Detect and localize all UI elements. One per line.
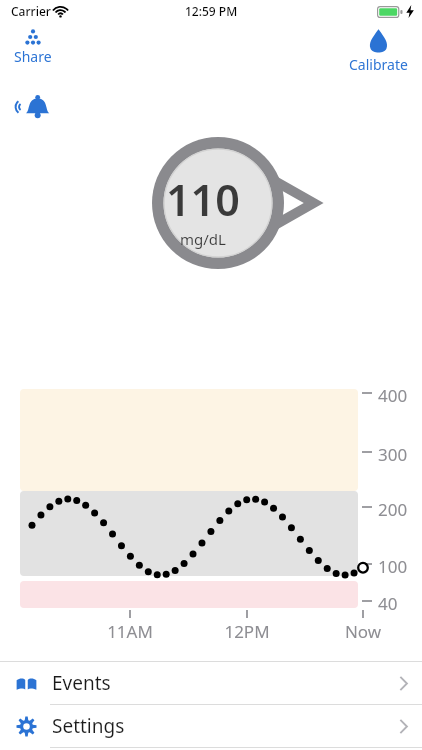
staticText: 400 bbox=[378, 384, 408, 407]
staticText: 12PM bbox=[215, 620, 279, 643]
staticText: Settings bbox=[52, 713, 125, 739]
staticText: Share bbox=[14, 47, 52, 66]
staticText: 12:59 PM bbox=[185, 3, 238, 19]
staticText: mg/dL bbox=[180, 229, 226, 249]
staticText: 40 bbox=[378, 592, 398, 615]
button[interactable]: Settings bbox=[0, 705, 422, 747]
staticText: Events bbox=[52, 670, 111, 696]
button[interactable]: Share bbox=[8, 27, 58, 68]
button[interactable]: Calibrate bbox=[343, 27, 414, 76]
staticText: 200 bbox=[378, 498, 408, 521]
staticText: Calibrate bbox=[349, 55, 408, 74]
button[interactable]: Alerts bbox=[11, 92, 57, 122]
staticText: Carrier bbox=[11, 3, 51, 19]
staticText: 300 bbox=[378, 443, 408, 466]
staticText: 11AM bbox=[98, 620, 162, 643]
button[interactable]: Events bbox=[0, 662, 422, 704]
staticText: 100 bbox=[378, 555, 408, 578]
staticText: Now bbox=[331, 620, 395, 643]
staticText: 110 bbox=[166, 170, 240, 229]
